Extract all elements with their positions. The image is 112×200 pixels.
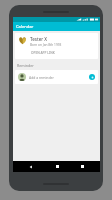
- button[interactable]: Recent apps: [75, 161, 89, 172]
- button[interactable]: Calendar: [13, 22, 100, 31]
- button[interactable]: Back: [24, 161, 38, 172]
- button[interactable]: OPEN APP LINK: [30, 50, 56, 56]
- button[interactable]: Home: [50, 161, 64, 172]
- button[interactable]: Add reminder: [89, 74, 95, 80]
- staticText: Born on Jan 8th 1993: [30, 43, 62, 47]
- staticText: Tester X: [30, 36, 48, 42]
- staticText: Add a reminder: [29, 75, 89, 80]
- staticText: OPEN APP LINK: [31, 51, 55, 55]
- staticText: Reminder: [17, 63, 34, 68]
- staticText: Calendar: [16, 24, 34, 29]
- button[interactable]: Add a reminder: [15, 70, 98, 84]
- button[interactable]: Tester X: [15, 33, 98, 59]
